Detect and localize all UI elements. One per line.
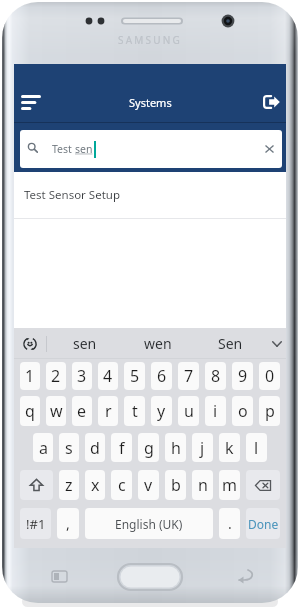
- staticText: Done: [248, 516, 279, 532]
- staticText: 4: [103, 365, 113, 387]
- staticText: 8: [211, 365, 221, 387]
- button[interactable]: g: [138, 433, 159, 462]
- button[interactable]: s: [59, 433, 79, 462]
- button[interactable]: p: [259, 396, 280, 426]
- staticText: wen: [144, 334, 172, 353]
- staticText: SAMSUNG: [118, 33, 183, 47]
- button[interactable]: e: [72, 396, 92, 426]
- staticText: n: [198, 474, 208, 496]
- button[interactable]: j: [192, 433, 213, 462]
- staticText: .: [228, 514, 232, 533]
- staticText: x: [91, 474, 100, 496]
- button[interactable]: 1: [20, 362, 40, 390]
- staticText: l: [254, 437, 259, 459]
- staticText: p: [265, 400, 275, 422]
- button[interactable]: 8: [205, 362, 226, 390]
- staticText: 2: [51, 365, 61, 387]
- button[interactable]: a: [33, 433, 53, 462]
- staticText: h: [171, 437, 181, 459]
- button[interactable]: 6: [151, 362, 172, 390]
- button[interactable]: 5: [124, 362, 145, 390]
- staticText: s: [65, 437, 73, 459]
- button[interactable]: More suggestions: [267, 328, 286, 359]
- button[interactable]: Test Sensor Setup: [14, 172, 286, 218]
- button[interactable]: Backspace: [246, 470, 280, 500]
- staticText: 5: [130, 365, 140, 387]
- button[interactable]: 2: [46, 362, 66, 390]
- staticText: 3: [77, 365, 87, 387]
- button[interactable]: Menu: [16, 87, 46, 117]
- button[interactable]: k: [219, 433, 240, 462]
- button[interactable]: b: [165, 470, 186, 500]
- button[interactable]: 4: [98, 362, 118, 390]
- button[interactable]: l: [246, 433, 267, 462]
- staticText: b: [171, 474, 181, 496]
- button[interactable]: Done: [246, 508, 280, 539]
- staticText: v: [144, 474, 153, 496]
- button[interactable]: v: [138, 470, 159, 500]
- button[interactable]: Log out: [256, 87, 286, 117]
- button[interactable]: w: [46, 396, 66, 426]
- staticText: j: [200, 437, 205, 459]
- button[interactable]: i: [205, 396, 226, 426]
- staticText: Test Sensor Setup: [24, 187, 120, 203]
- button[interactable]: Emoji: [14, 328, 46, 359]
- staticText: 7: [184, 365, 194, 387]
- staticText: f: [119, 437, 125, 459]
- staticText: 9: [238, 365, 248, 387]
- button[interactable]: !#1: [20, 508, 51, 539]
- button[interactable]: q: [20, 396, 40, 426]
- button[interactable]: wen: [121, 328, 194, 359]
- button[interactable]: .: [219, 508, 240, 539]
- staticText: y: [157, 400, 166, 422]
- button[interactable]: Sen: [194, 328, 267, 359]
- staticText: English (UK): [115, 516, 183, 532]
- staticText: 0: [265, 365, 275, 387]
- button[interactable]: m: [219, 470, 240, 500]
- button[interactable]: ,: [57, 508, 79, 539]
- button[interactable]: u: [178, 396, 199, 426]
- staticText: i: [213, 400, 218, 422]
- staticText: ,: [66, 514, 70, 533]
- staticText: o: [238, 400, 248, 422]
- button[interactable]: 9: [232, 362, 253, 390]
- staticText: Sen: [218, 334, 243, 353]
- button[interactable]: o: [232, 396, 253, 426]
- button[interactable]: sen: [48, 328, 121, 359]
- button[interactable]: f: [111, 433, 132, 462]
- button[interactable]: x: [85, 470, 105, 500]
- staticText: t: [132, 400, 138, 422]
- staticText: Systems: [129, 95, 172, 110]
- button[interactable]: c: [111, 470, 132, 500]
- staticText: 6: [157, 365, 167, 387]
- staticText: m: [222, 474, 237, 496]
- button[interactable]: English (UK): [85, 508, 213, 539]
- staticText: sen: [73, 334, 97, 353]
- button[interactable]: 7: [178, 362, 199, 390]
- button[interactable]: Shift: [20, 470, 53, 500]
- button[interactable]: Test: [20, 130, 282, 168]
- staticText: k: [225, 437, 234, 459]
- staticText: u: [184, 400, 194, 422]
- button[interactable]: h: [165, 433, 186, 462]
- staticText: z: [65, 474, 73, 496]
- staticText: sen: [75, 142, 93, 156]
- button[interactable]: Clear search: [255, 130, 282, 168]
- staticText: !#1: [26, 515, 46, 533]
- button[interactable]: r: [98, 396, 118, 426]
- staticText: c: [118, 474, 126, 496]
- button[interactable]: d: [85, 433, 105, 462]
- button[interactable]: y: [151, 396, 172, 426]
- staticText: Test: [52, 142, 75, 156]
- staticText: 1: [25, 365, 35, 387]
- staticText: a: [39, 437, 48, 459]
- staticText: q: [25, 400, 35, 422]
- staticText: d: [90, 437, 100, 459]
- button[interactable]: n: [192, 470, 213, 500]
- staticText: g: [144, 437, 154, 459]
- button[interactable]: 0: [259, 362, 280, 390]
- button[interactable]: z: [59, 470, 79, 500]
- button[interactable]: 3: [72, 362, 92, 390]
- staticText: r: [105, 400, 112, 422]
- button[interactable]: t: [124, 396, 145, 426]
